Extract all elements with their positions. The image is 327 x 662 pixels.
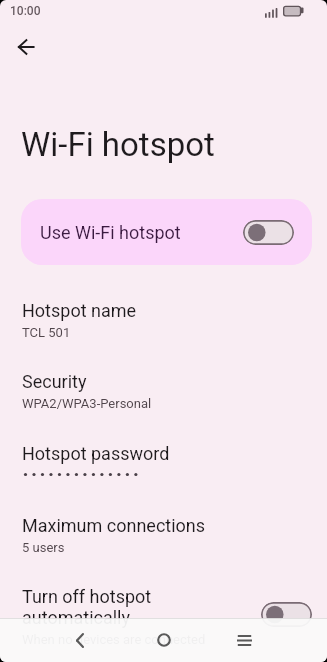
staticText: Turn off hotspot automatically [22,586,249,628]
button[interactable]: Recent apps [227,623,261,657]
button[interactable]: Hotspot name [0,291,327,362]
staticText: 10:00 [10,4,41,18]
staticText: TCL 501 [22,325,71,340]
button[interactable]: Maximum connections [0,506,327,577]
button[interactable]: Back [63,623,97,657]
staticText: Hotspot password [22,443,170,464]
staticText: Maximum connections [22,515,206,536]
staticText: Hotspot name [22,300,137,321]
button[interactable]: Turn off hotspot automatically [0,577,327,648]
staticText: When no devices are connected [22,632,206,647]
button[interactable]: Toggle [261,602,312,627]
staticText: Wi-Fi hotspot [21,125,215,164]
staticText: 5 users [22,540,65,555]
button[interactable]: Hotspot password [0,434,327,505]
staticText: Security [22,371,87,392]
button[interactable]: Use Wi-Fi hotspot [21,199,312,265]
staticText: Use Wi-Fi hotspot [40,222,181,243]
button[interactable]: Security [0,362,327,433]
button[interactable]: Home [147,623,181,657]
button[interactable]: Back [4,25,48,69]
staticText: WPA2/WPA3-Personal [22,396,152,411]
button[interactable]: Toggle [243,220,294,245]
